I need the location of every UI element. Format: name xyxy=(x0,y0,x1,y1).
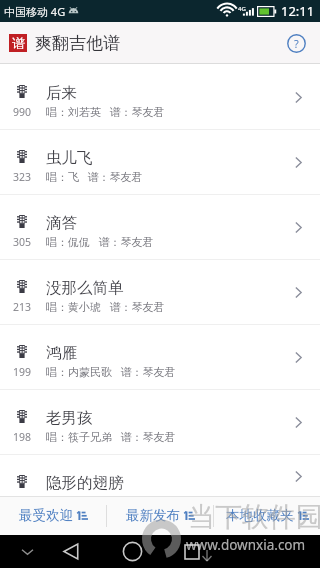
staticText: 老男孩 xyxy=(46,408,93,428)
button[interactable]: Back xyxy=(55,535,87,568)
button[interactable]: 990 xyxy=(0,65,320,130)
staticText: 中国移动 4G xyxy=(4,4,66,19)
button[interactable]: 213 xyxy=(0,260,320,325)
staticText: 唱：侃侃 谱：琴友君 xyxy=(46,234,154,249)
staticText: 当下软件园 xyxy=(188,500,320,534)
staticText: 后来 xyxy=(46,83,77,103)
staticText: 323 xyxy=(13,170,32,184)
button[interactable]: Recent apps xyxy=(176,535,208,568)
staticText: 4G xyxy=(238,5,246,13)
button[interactable]: Help xyxy=(283,30,309,56)
staticText: 最受欢迎 xyxy=(19,507,73,524)
staticText: 没那么简单 xyxy=(46,278,124,298)
button[interactable]: Home xyxy=(116,535,148,568)
staticText: www.downxia.com xyxy=(186,536,306,554)
staticText: 12:11 xyxy=(281,2,315,20)
button[interactable]: 最受欢迎 xyxy=(0,496,106,535)
button[interactable]: 199 xyxy=(0,325,320,390)
staticText: 隐形的翅膀 xyxy=(46,473,124,493)
staticText: 最新发布 xyxy=(126,507,180,524)
button[interactable]: 本地收藏夹 xyxy=(214,496,320,535)
button[interactable]: 198 xyxy=(0,390,320,455)
staticText: 唱：刘若英 谱：琴友君 xyxy=(46,104,165,119)
staticText: 鸿雁 xyxy=(46,343,77,363)
staticText: 唱：筷子兄弟 谱：琴友君 xyxy=(46,429,176,444)
button[interactable]: 323 xyxy=(0,130,320,195)
staticText: 990 xyxy=(13,105,32,119)
staticText: 谱 xyxy=(12,35,25,51)
button[interactable]: 305 xyxy=(0,195,320,260)
staticText: 199 xyxy=(13,365,32,379)
staticText: 唱：黄小琥 谱：琴友君 xyxy=(46,299,165,314)
staticText: 滴答 xyxy=(46,213,77,233)
staticText: 213 xyxy=(13,300,32,314)
staticText: ? xyxy=(294,36,299,51)
staticText: 虫儿飞 xyxy=(46,148,93,168)
staticText: 305 xyxy=(13,235,32,249)
staticText: 本地收藏夹 xyxy=(226,507,294,524)
button[interactable]: 180 xyxy=(0,455,320,496)
staticText: 唱：飞 谱：琴友君 xyxy=(46,169,143,184)
staticText: 唱：内蒙民歌 谱：琴友君 xyxy=(46,364,176,379)
button[interactable]: 最新发布 xyxy=(107,496,213,535)
staticText: 爽翻吉他谱 xyxy=(35,33,120,54)
staticText: 198 xyxy=(13,430,32,444)
button[interactable]: Hide keyboard xyxy=(15,535,39,568)
